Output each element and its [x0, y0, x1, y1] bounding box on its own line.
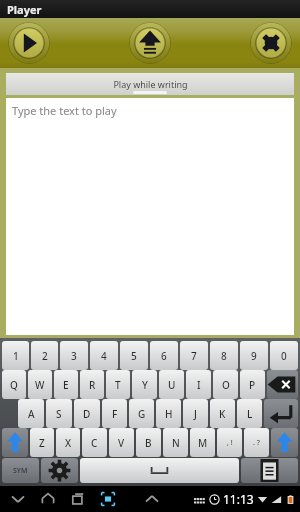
button[interactable]: Close — [250, 22, 292, 64]
staticText: Play while writing — [113, 78, 188, 90]
button[interactable]: Space — [80, 458, 239, 483]
staticText: U — [168, 378, 176, 392]
button[interactable]: R — [80, 370, 104, 399]
button[interactable]: B — [136, 428, 161, 457]
button[interactable]: F — [102, 399, 127, 428]
staticText: Q — [10, 378, 18, 392]
staticText: B — [145, 436, 152, 450]
button[interactable]: N — [163, 428, 188, 457]
button[interactable]: V — [109, 428, 134, 457]
staticText: V — [118, 436, 125, 450]
button[interactable]: 4 — [90, 341, 118, 370]
button[interactable]: Home — [38, 489, 58, 509]
button[interactable]: Recents — [68, 489, 88, 509]
button[interactable]: D — [74, 399, 100, 428]
button[interactable]: . ? — [244, 428, 269, 457]
button[interactable]: L — [237, 399, 262, 428]
button[interactable]: Q — [2, 370, 26, 399]
staticText: Type the text to play — [12, 103, 117, 118]
staticText: 5 — [131, 349, 137, 363]
button[interactable]: Type the text to play — [6, 98, 294, 335]
button[interactable]: P — [240, 370, 265, 399]
button[interactable]: M — [190, 428, 215, 457]
staticText: D — [83, 407, 91, 421]
button[interactable]: 8 — [210, 341, 238, 370]
staticText: A — [28, 407, 35, 421]
button[interactable]: Play while writing — [6, 73, 294, 95]
button[interactable]: U — [159, 370, 184, 399]
button[interactable]: Enter — [264, 399, 298, 428]
button[interactable]: 0 — [270, 341, 298, 370]
button[interactable]: Clipboard — [241, 458, 298, 483]
button[interactable]: A — [18, 399, 44, 428]
staticText: Y — [142, 378, 148, 392]
button[interactable]: 3 — [60, 341, 88, 370]
staticText: . ? — [253, 438, 260, 448]
button[interactable]: O — [213, 370, 238, 399]
staticText: 3 — [71, 349, 77, 363]
button[interactable]: I — [186, 370, 211, 399]
staticText: R — [89, 378, 96, 392]
button[interactable]: Upload — [129, 22, 171, 64]
button[interactable]: Z — [30, 428, 54, 457]
staticText: 2 — [42, 349, 48, 363]
button[interactable]: G — [129, 399, 154, 428]
staticText: L — [247, 407, 253, 421]
staticText: S — [56, 407, 62, 421]
button[interactable]: S — [46, 399, 72, 428]
button[interactable]: 9 — [240, 341, 268, 370]
staticText: 11:13 — [223, 491, 254, 507]
button[interactable]: Hide keyboard — [98, 489, 118, 509]
staticText: T — [115, 378, 121, 392]
staticText: Player — [7, 2, 42, 17]
button[interactable]: E — [54, 370, 78, 399]
button[interactable]: SYM — [2, 458, 39, 483]
button[interactable]: X — [56, 428, 80, 457]
staticText: K — [219, 407, 226, 421]
staticText: 8 — [221, 349, 227, 363]
button[interactable]: C — [82, 428, 107, 457]
button[interactable]: 7 — [180, 341, 208, 370]
staticText: E — [63, 378, 69, 392]
button[interactable]: Shift — [271, 428, 298, 457]
staticText: C — [91, 436, 98, 450]
staticText: 6 — [161, 349, 167, 363]
staticText: P — [249, 378, 256, 392]
staticText: H — [165, 407, 173, 421]
staticText: N — [172, 436, 180, 450]
staticText: G — [138, 407, 146, 421]
button[interactable]: Y — [132, 370, 157, 399]
staticText: 4 — [101, 349, 107, 363]
button[interactable]: 6 — [150, 341, 178, 370]
button[interactable]: 1 — [2, 341, 29, 370]
staticText: SYM — [13, 466, 28, 476]
staticText: F — [112, 407, 118, 421]
button[interactable]: T — [106, 370, 130, 399]
button[interactable]: 2 — [31, 341, 58, 370]
button[interactable]: H — [156, 399, 181, 428]
button[interactable]: Expand — [142, 489, 162, 509]
staticText: 7 — [191, 349, 197, 363]
button[interactable]: Play — [8, 22, 50, 64]
button[interactable]: W — [28, 370, 52, 399]
staticText: Z — [39, 436, 45, 450]
staticText: 1 — [13, 349, 19, 363]
staticText: J — [194, 407, 197, 421]
staticText: I — [197, 378, 201, 392]
staticText: O — [222, 378, 230, 392]
button[interactable]: Back — [8, 489, 28, 509]
staticText: 0 — [281, 349, 287, 363]
button[interactable]: Shift — [2, 428, 28, 457]
button[interactable]: Settings — [41, 458, 78, 483]
button[interactable]: , ! — [217, 428, 242, 457]
staticText: , ! — [227, 438, 233, 448]
staticText: W — [35, 378, 45, 392]
staticText: X — [65, 436, 72, 450]
button[interactable]: Backspace — [267, 370, 298, 399]
button[interactable]: K — [210, 399, 235, 428]
staticText: 9 — [251, 349, 257, 363]
button[interactable]: 5 — [120, 341, 148, 370]
staticText: M — [198, 436, 208, 450]
button[interactable]: J — [183, 399, 208, 428]
